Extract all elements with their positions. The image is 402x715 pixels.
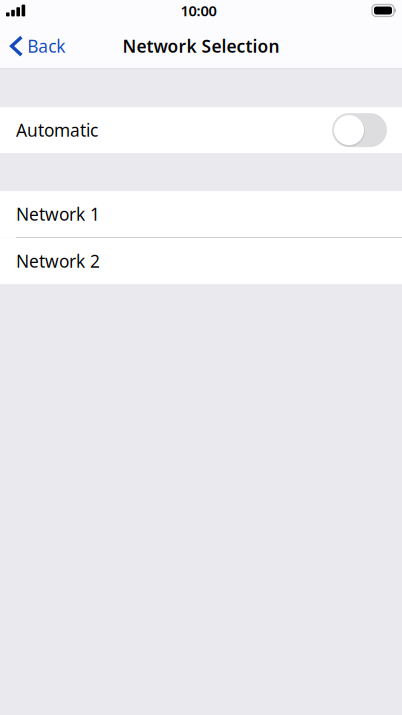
- button[interactable]: Back: [0, 24, 75, 68]
- staticText: Network 2: [16, 250, 100, 273]
- button[interactable]: Network 2: [0, 238, 402, 284]
- button[interactable]: Automatic, off: [332, 113, 387, 147]
- staticText: Automatic: [16, 119, 98, 142]
- staticText: Network 1: [16, 203, 100, 226]
- staticText: Network Selection: [122, 34, 279, 57]
- staticText: Back: [27, 34, 65, 57]
- staticText: 10:00: [180, 1, 216, 20]
- button[interactable]: Automatic: [0, 107, 402, 153]
- button[interactable]: Network 1: [0, 191, 402, 237]
